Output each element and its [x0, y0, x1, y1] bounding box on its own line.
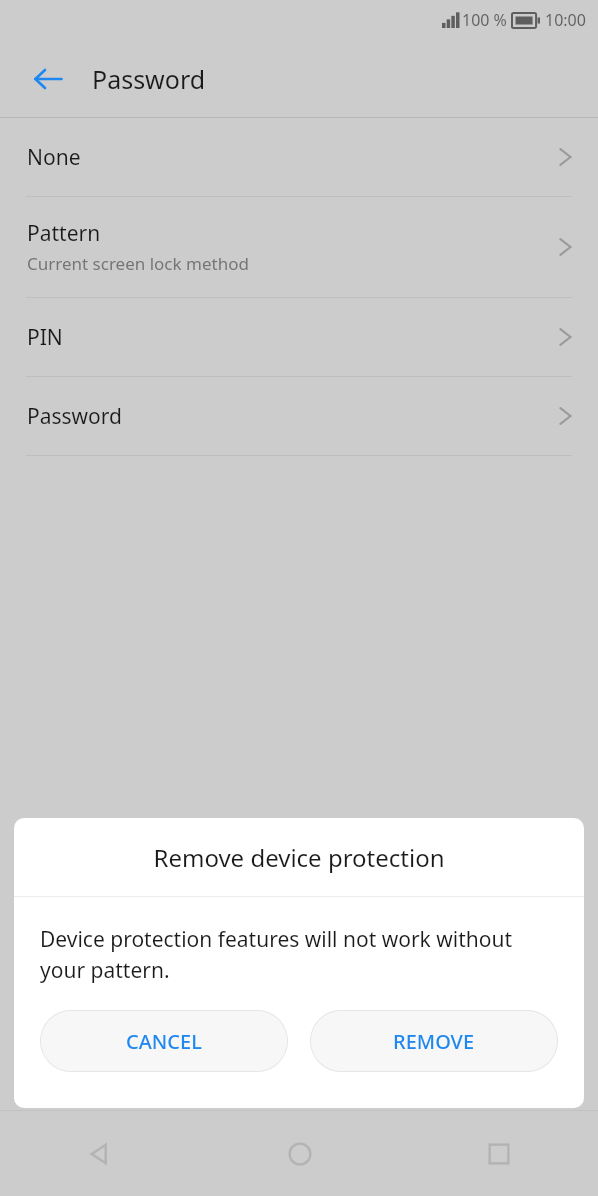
button[interactable]: Back: [20, 51, 76, 107]
button[interactable]: PIN: [0, 298, 598, 376]
staticText: Password: [92, 62, 206, 96]
button[interactable]: None: [0, 118, 598, 196]
staticText: 10:00: [545, 9, 586, 31]
button[interactable]: REMOVE: [310, 1010, 558, 1072]
staticText: CANCEL: [126, 1028, 202, 1055]
staticText: REMOVE: [393, 1028, 475, 1055]
staticText: None: [27, 143, 81, 172]
staticText: Pattern: [27, 219, 101, 248]
staticText: Password: [27, 402, 122, 431]
button[interactable]: CANCEL: [40, 1010, 288, 1072]
staticText: Device protection features will not work…: [40, 925, 544, 984]
button[interactable]: Pattern: [0, 197, 598, 297]
staticText: Remove device protection: [153, 841, 445, 874]
button[interactable]: Password: [0, 377, 598, 455]
staticText: Current screen lock method: [27, 252, 249, 275]
staticText: 100 %: [462, 9, 507, 31]
staticText: PIN: [27, 323, 63, 352]
